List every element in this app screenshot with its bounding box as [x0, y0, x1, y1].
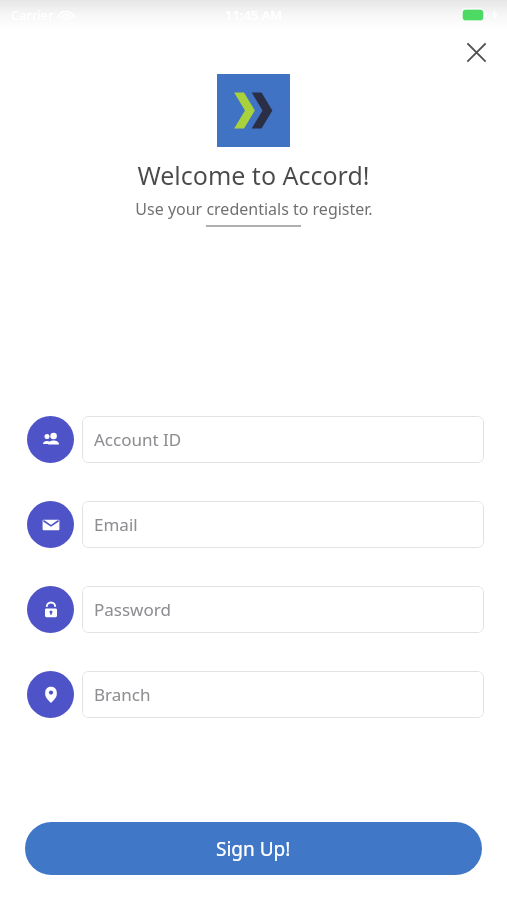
button[interactable]: Account ID	[82, 416, 484, 463]
staticText: Sign Up!	[216, 836, 291, 862]
staticText: Account ID	[94, 428, 182, 451]
staticText: Carrier	[11, 6, 54, 24]
staticText: 11:45 AM	[225, 6, 283, 24]
button[interactable]: Email	[27, 501, 74, 548]
staticText: Welcome to Accord!	[0, 158, 507, 192]
button[interactable]: Sign Up!	[25, 822, 482, 875]
staticText: Use your credentials to register.	[135, 198, 373, 220]
button[interactable]: Account	[27, 416, 74, 463]
button[interactable]: Password	[27, 586, 74, 633]
button[interactable]: Password	[82, 586, 484, 633]
button[interactable]: Email	[82, 501, 484, 548]
button[interactable]: Branch	[27, 671, 74, 718]
staticText: Branch	[94, 683, 151, 706]
staticText: Password	[94, 598, 171, 621]
staticText: Email	[94, 513, 138, 536]
button[interactable]: Branch	[82, 671, 484, 718]
button[interactable]: Close	[459, 35, 493, 69]
